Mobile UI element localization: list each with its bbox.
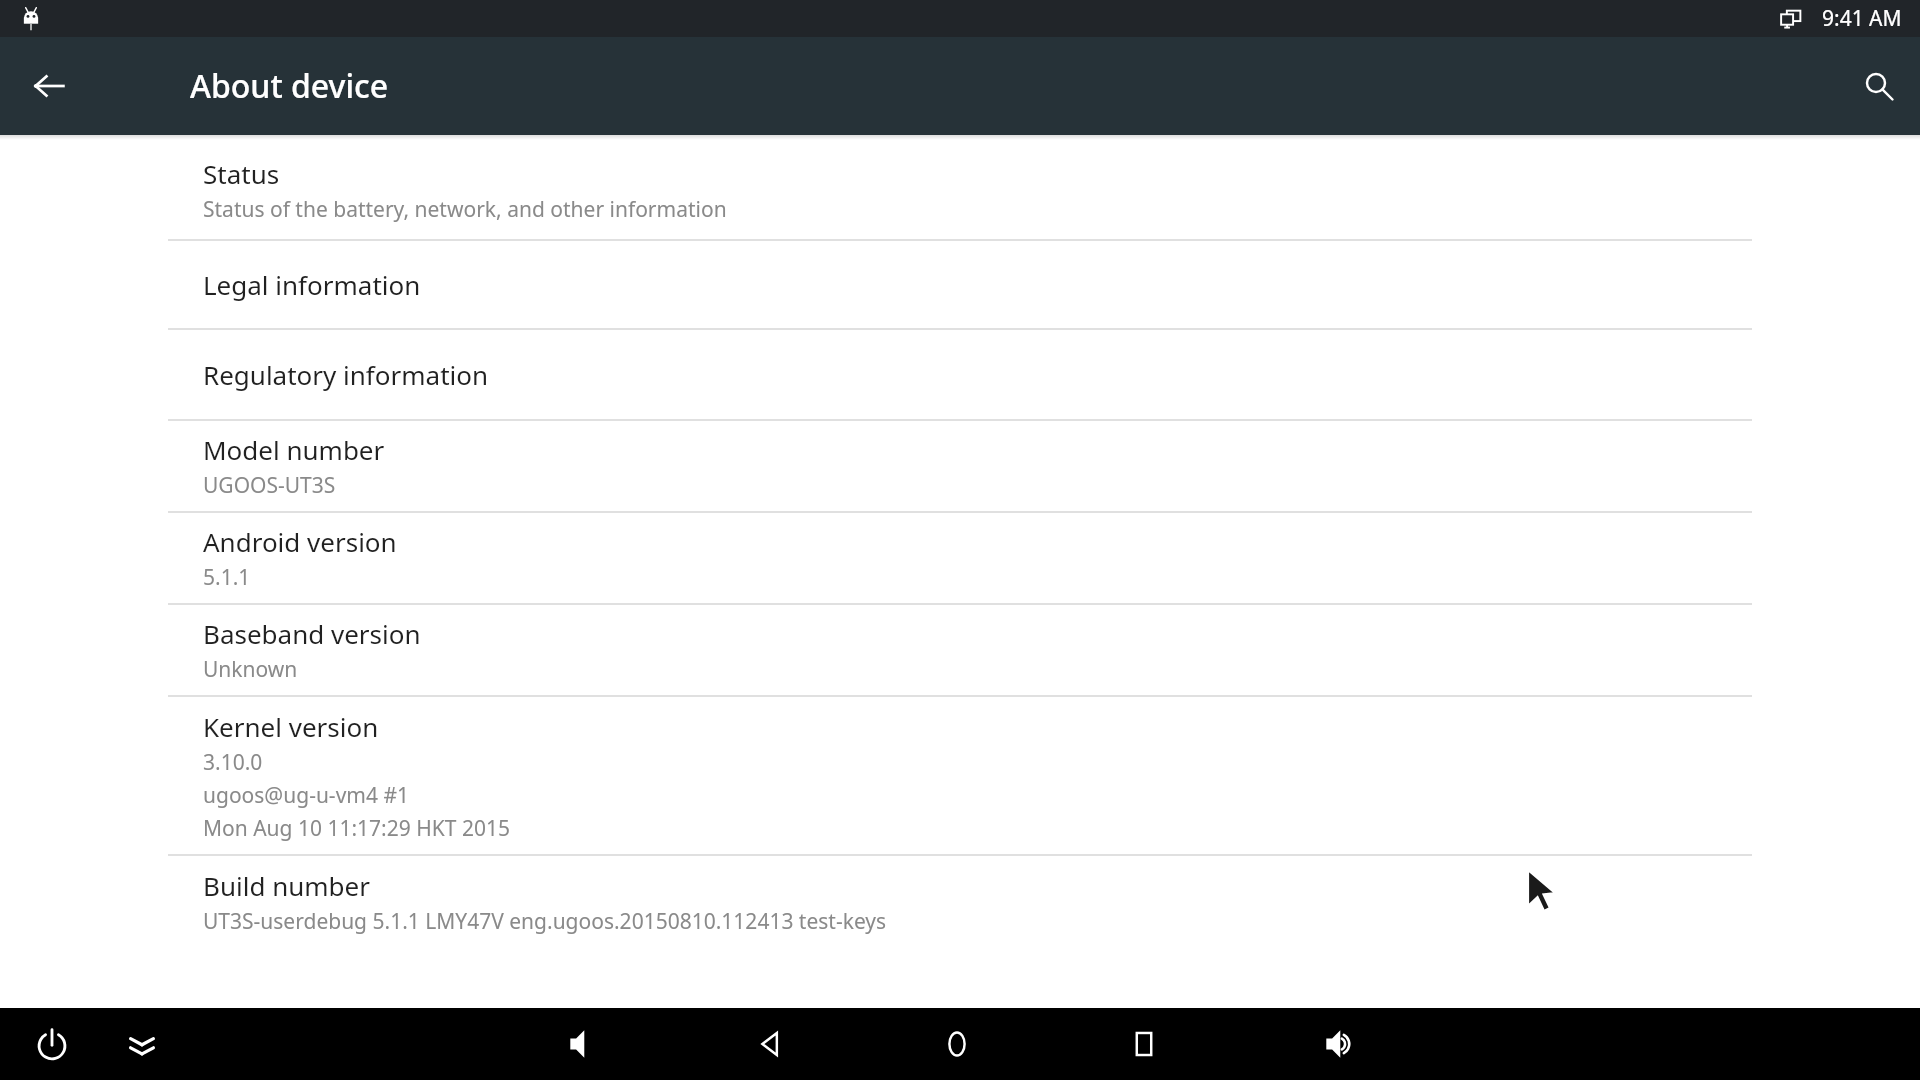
button[interactable]: Regulatory information bbox=[0, 330, 1920, 419]
button[interactable]: Recent apps bbox=[1108, 1008, 1180, 1080]
button[interactable]: Legal information bbox=[0, 241, 1920, 328]
button[interactable]: Volume up bbox=[1303, 1008, 1375, 1080]
staticText: ugoos@ug-u-vm4 #1 bbox=[203, 781, 409, 810]
staticText: Model number bbox=[203, 432, 385, 467]
staticText: Regulatory information bbox=[203, 357, 489, 392]
staticText: Unknown bbox=[203, 655, 298, 684]
staticText: Mon Aug 10 11:17:29 HKT 2015 bbox=[203, 814, 510, 843]
button[interactable]: Kernel version bbox=[0, 697, 1920, 854]
button[interactable]: Model number bbox=[0, 421, 1920, 511]
staticText: 3.10.0 bbox=[203, 748, 263, 777]
button[interactable]: Home bbox=[921, 1008, 993, 1080]
button[interactable]: Navigate up bbox=[20, 57, 78, 115]
button[interactable]: Status bbox=[0, 140, 1920, 239]
staticText: Build number bbox=[203, 868, 370, 903]
staticText: Status of the battery, network, and othe… bbox=[203, 195, 727, 224]
button[interactable]: Search bbox=[1850, 57, 1908, 115]
staticText: Status bbox=[203, 156, 280, 191]
staticText: Legal information bbox=[203, 267, 421, 302]
staticText: UGOOS-UT3S bbox=[203, 471, 336, 500]
staticText: 5.1.1 bbox=[203, 563, 251, 592]
button[interactable]: Android version bbox=[0, 513, 1920, 603]
button[interactable]: Volume down bbox=[547, 1008, 619, 1080]
button[interactable]: Back bbox=[734, 1008, 806, 1080]
button[interactable]: Power bbox=[16, 1008, 88, 1080]
button[interactable]: Build number bbox=[0, 856, 1920, 948]
staticText: About device bbox=[190, 64, 389, 108]
staticText: 9:41 AM bbox=[1822, 4, 1902, 33]
staticText: Baseband version bbox=[203, 616, 421, 651]
staticText: Kernel version bbox=[203, 709, 379, 744]
button[interactable]: Baseband version bbox=[0, 605, 1920, 695]
staticText: Android version bbox=[203, 524, 397, 559]
button[interactable]: Hide navigation bbox=[106, 1008, 178, 1080]
staticText: UT3S-userdebug 5.1.1 LMY47V eng.ugoos.20… bbox=[203, 907, 887, 936]
